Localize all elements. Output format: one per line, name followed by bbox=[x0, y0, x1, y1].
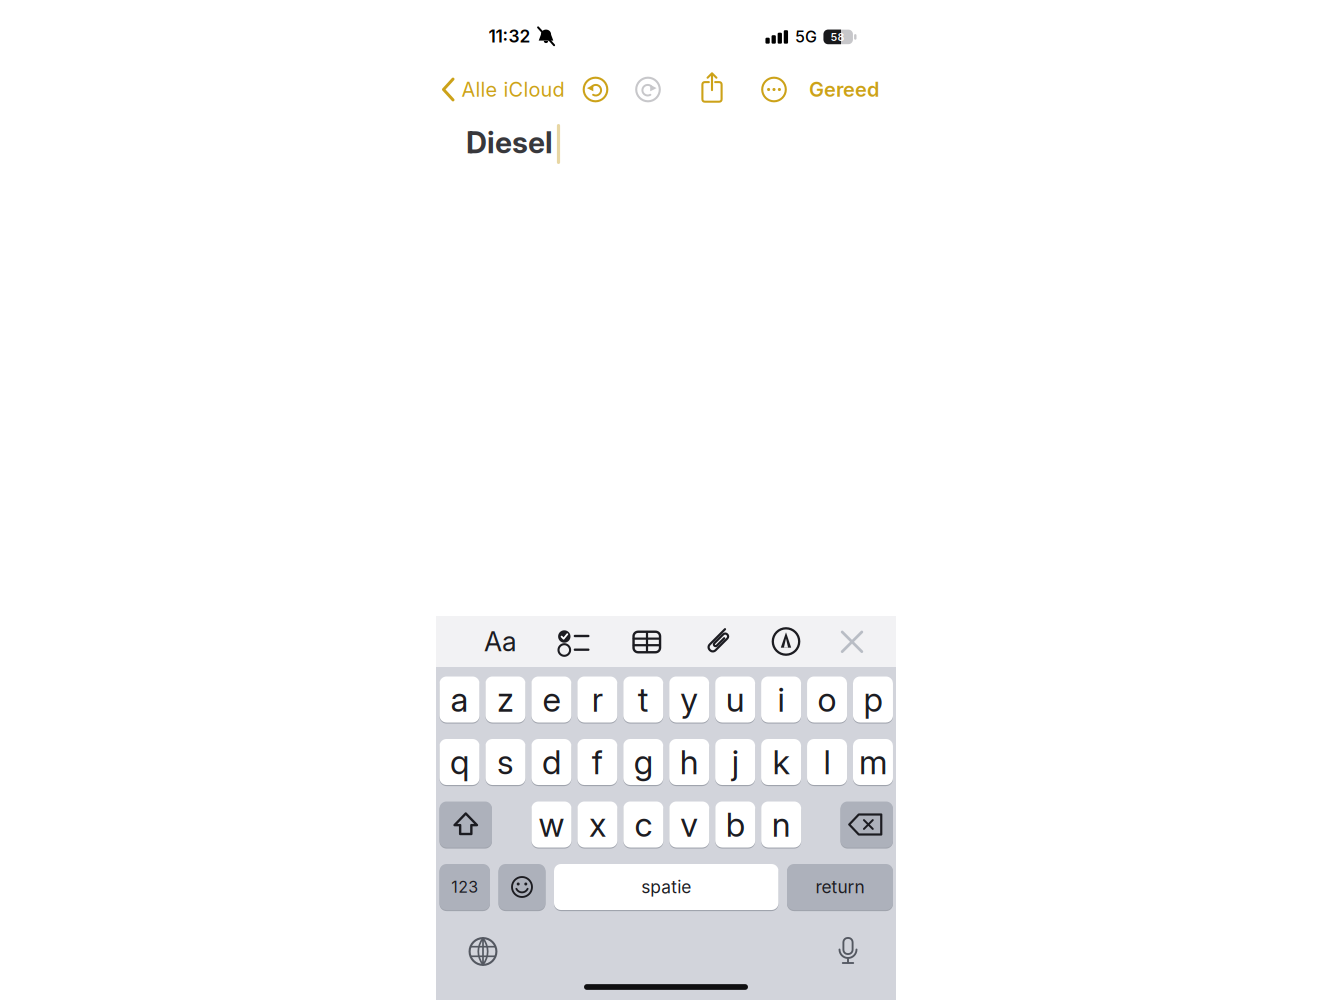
button[interactable]: o bbox=[807, 676, 847, 723]
staticText: y bbox=[680, 680, 698, 719]
button[interactable]: j bbox=[715, 738, 755, 785]
staticText: Aa bbox=[484, 626, 517, 657]
button[interactable]: i bbox=[761, 676, 801, 723]
button[interactable]: h bbox=[669, 738, 709, 785]
staticText: 5G bbox=[795, 27, 817, 46]
button[interactable]: Gereed bbox=[809, 78, 879, 101]
staticText: c bbox=[634, 805, 652, 844]
staticText: k bbox=[773, 742, 790, 782]
staticText: z bbox=[497, 680, 514, 719]
button[interactable]: return bbox=[787, 863, 893, 910]
button[interactable]: m bbox=[853, 738, 893, 785]
button[interactable]: Checklist bbox=[557, 629, 589, 657]
staticText: n bbox=[772, 805, 791, 844]
button[interactable]: e bbox=[531, 676, 571, 723]
staticText: m bbox=[859, 742, 887, 782]
staticText: h bbox=[680, 742, 699, 782]
staticText: b bbox=[726, 805, 745, 844]
staticText: o bbox=[817, 680, 836, 719]
button[interactable]: Delete bbox=[840, 801, 893, 848]
staticText: Diesel bbox=[466, 125, 553, 160]
staticText: spatie bbox=[641, 877, 691, 897]
button[interactable]: f bbox=[577, 738, 617, 785]
staticText: 123 bbox=[451, 878, 478, 896]
staticText: a bbox=[450, 680, 468, 719]
button[interactable]: Alle iCloud bbox=[441, 76, 564, 102]
staticText: Gereed bbox=[809, 78, 879, 101]
staticText: w bbox=[538, 805, 564, 844]
button[interactable]: n bbox=[761, 801, 801, 848]
staticText: r bbox=[592, 680, 603, 719]
staticText: e bbox=[542, 680, 560, 719]
staticText: v bbox=[680, 805, 698, 844]
button[interactable]: Emoji bbox=[498, 863, 545, 910]
staticText: 11:32 bbox=[488, 26, 530, 46]
staticText: p bbox=[863, 680, 882, 719]
button[interactable]: g bbox=[623, 738, 663, 785]
staticText: t bbox=[638, 680, 649, 719]
staticText: u bbox=[726, 680, 745, 719]
staticText: q bbox=[450, 742, 469, 782]
staticText: 58 bbox=[830, 31, 844, 43]
button[interactable]: k bbox=[761, 738, 801, 785]
button[interactable]: d bbox=[531, 738, 571, 785]
staticText: g bbox=[634, 742, 653, 782]
staticText: f bbox=[592, 742, 603, 782]
button[interactable]: w bbox=[531, 801, 571, 848]
button[interactable]: z bbox=[485, 676, 525, 723]
button[interactable]: c bbox=[623, 801, 663, 848]
button[interactable]: Next keyboard bbox=[467, 935, 499, 967]
button[interactable]: l bbox=[807, 738, 847, 785]
staticText: Alle iCloud bbox=[461, 78, 564, 101]
button[interactable]: s bbox=[485, 738, 525, 785]
button[interactable]: Markup bbox=[771, 626, 801, 656]
staticText: l bbox=[823, 742, 830, 782]
button[interactable]: More bbox=[759, 74, 789, 104]
button[interactable]: v bbox=[669, 801, 709, 848]
button[interactable]: Dictate bbox=[833, 935, 863, 969]
button[interactable]: Format bbox=[484, 626, 517, 657]
staticText: d bbox=[542, 742, 561, 782]
button[interactable]: 123 bbox=[439, 863, 490, 910]
button[interactable]: Share bbox=[699, 71, 725, 103]
button[interactable]: b bbox=[715, 801, 755, 848]
button[interactable]: y bbox=[669, 676, 709, 723]
button[interactable]: r bbox=[577, 676, 617, 723]
button[interactable]: Shift bbox=[439, 801, 492, 848]
button[interactable]: spatie bbox=[554, 863, 778, 910]
button[interactable]: Table bbox=[633, 631, 661, 653]
staticText: s bbox=[497, 742, 514, 782]
button[interactable]: q bbox=[439, 738, 479, 785]
staticText: i bbox=[778, 680, 785, 719]
button[interactable]: Dismiss keyboard bbox=[840, 630, 864, 654]
button[interactable]: x bbox=[577, 801, 617, 848]
staticText: j bbox=[732, 742, 739, 782]
button[interactable]: Redo bbox=[633, 74, 663, 104]
button[interactable]: a bbox=[439, 676, 479, 723]
staticText: x bbox=[589, 805, 606, 844]
staticText: return bbox=[815, 877, 864, 897]
button[interactable]: t bbox=[623, 676, 663, 723]
button[interactable]: Undo bbox=[580, 74, 610, 104]
button[interactable]: Attach bbox=[701, 625, 735, 659]
button[interactable]: p bbox=[853, 676, 893, 723]
button[interactable]: u bbox=[715, 676, 755, 723]
